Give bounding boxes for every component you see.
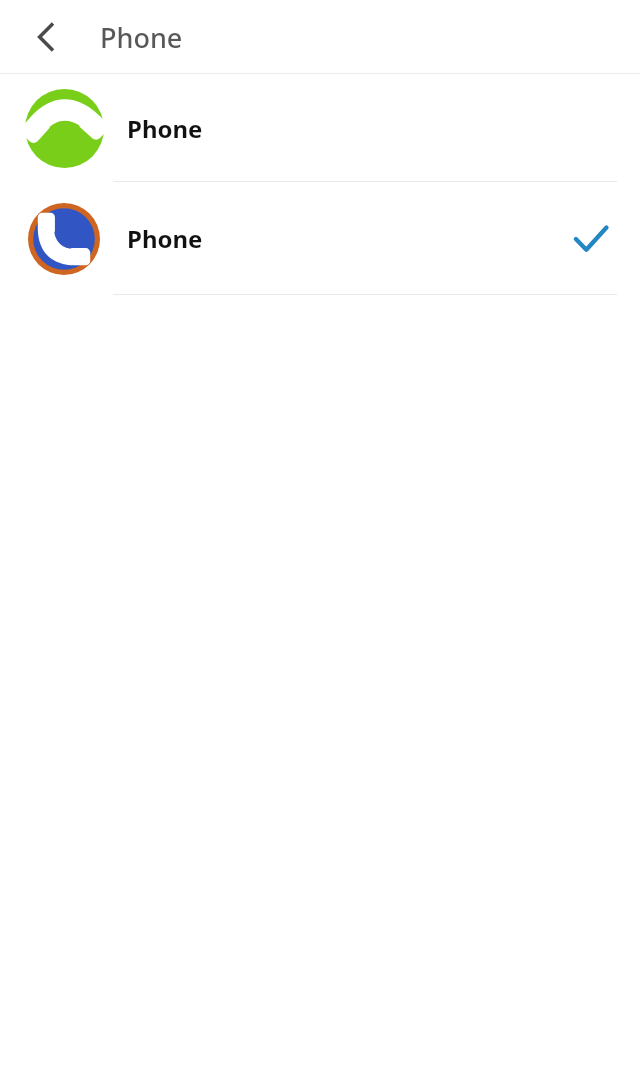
button[interactable]: Back [0,0,92,74]
other: Selected [573,221,609,257]
button[interactable]: Phone [0,182,640,295]
button[interactable]: Phone [0,74,640,182]
staticText: Phone [100,19,183,56]
staticText: Phone [127,112,203,145]
staticText: Phone [127,222,203,255]
